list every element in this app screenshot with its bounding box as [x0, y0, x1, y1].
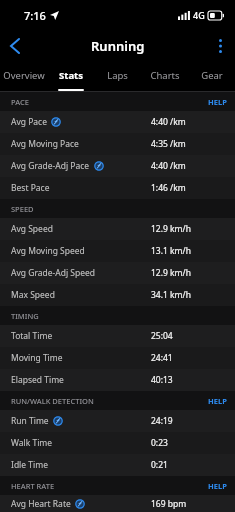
staticText: Walk Time	[11, 437, 53, 449]
button[interactable]: Laps	[94, 62, 141, 88]
button[interactable]: HELP	[200, 479, 235, 493]
staticText: HELP	[208, 396, 227, 406]
staticText: 12.9 km/h	[151, 267, 191, 279]
button[interactable]: Elapsed Time	[0, 369, 235, 391]
staticText: 34.1 km/h	[151, 289, 191, 301]
staticText: PACE	[11, 97, 29, 107]
staticText: Avg Pace	[11, 116, 47, 128]
button[interactable]: Back	[0, 31, 30, 61]
staticText: Charts	[150, 69, 180, 82]
button[interactable]: Run Time	[0, 410, 235, 432]
button[interactable]: More options	[205, 31, 235, 61]
button[interactable]: Avg Heart Rate	[0, 495, 235, 512]
button[interactable]: Avg Pace	[0, 111, 235, 133]
staticText: HELP	[208, 97, 227, 107]
staticText: Avg Grade-Adj Speed	[11, 267, 96, 279]
button[interactable]: Overview	[0, 62, 47, 88]
button[interactable]: Max Speed	[0, 284, 235, 306]
staticText: Idle Time	[11, 459, 48, 471]
staticText: Avg Heart Rate	[11, 498, 71, 510]
button[interactable]: Best Pace	[0, 177, 235, 199]
button[interactable]: Walk Time	[0, 432, 235, 454]
staticText: Total Time	[11, 330, 53, 342]
staticText: 13.1 km/h	[151, 245, 191, 257]
staticText: Max Speed	[11, 289, 55, 301]
staticText: 25:04	[151, 330, 173, 342]
staticText: Run Time	[11, 415, 49, 427]
staticText: 24:19	[151, 415, 173, 427]
staticText: 4G	[193, 9, 205, 21]
staticText: HEART RATE	[11, 481, 55, 491]
button[interactable]: Gear	[188, 62, 235, 88]
button[interactable]: Stats	[47, 62, 94, 88]
staticText: Avg Speed	[11, 223, 53, 235]
button[interactable]: Charts	[141, 62, 188, 88]
button[interactable]: Avg Grade-Adj Speed	[0, 262, 235, 284]
staticText: Stats	[59, 69, 83, 82]
button[interactable]: Avg Speed	[0, 218, 235, 240]
staticText: Avg Moving Pace	[11, 138, 79, 150]
staticText: Best Pace	[11, 182, 50, 194]
staticText: 169 bpm	[151, 498, 187, 510]
button[interactable]: HELP	[200, 95, 235, 109]
staticText: Moving Time	[11, 352, 63, 364]
button[interactable]: Avg Moving Speed	[0, 240, 235, 262]
button[interactable]: Moving Time	[0, 347, 235, 369]
staticText: Running	[91, 37, 145, 55]
staticText: TIMING	[11, 311, 39, 321]
staticText: 1:46 /km	[151, 182, 186, 194]
staticText: RUN/WALK DETECTION	[11, 396, 94, 406]
staticText: Elapsed Time	[11, 374, 64, 386]
staticText: Gear	[201, 69, 223, 82]
staticText: Avg Moving Speed	[11, 245, 85, 257]
staticText: 4:40 /km	[151, 116, 186, 128]
staticText: Laps	[107, 69, 128, 82]
button[interactable]: Avg Moving Pace	[0, 133, 235, 155]
staticText: 4:40 /km	[151, 160, 186, 172]
staticText: 40:13	[151, 374, 173, 386]
button[interactable]: Idle Time	[0, 454, 235, 476]
button[interactable]: Total Time	[0, 325, 235, 347]
staticText: Avg Grade-Adj Pace	[11, 160, 90, 172]
staticText: 4:35 /km	[151, 138, 186, 150]
staticText: 0:21	[151, 459, 168, 471]
staticText: 7:16	[24, 8, 46, 23]
staticText: 0:23	[151, 437, 168, 449]
staticText: HELP	[208, 481, 227, 491]
button[interactable]: Avg Grade-Adj Pace	[0, 155, 235, 177]
staticText: 12.9 km/h	[151, 223, 191, 235]
staticText: Overview	[3, 69, 45, 82]
staticText: SPEED	[11, 204, 34, 214]
button[interactable]: HELP	[200, 394, 235, 408]
staticText: 24:41	[151, 352, 173, 364]
